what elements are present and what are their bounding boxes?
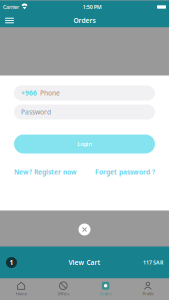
button[interactable]: Forget password ? xyxy=(95,167,155,176)
button[interactable]: Home xyxy=(0,278,42,299)
button[interactable]: Close xyxy=(75,220,93,238)
button[interactable]: Profile xyxy=(127,278,169,299)
button[interactable]: View Cart xyxy=(0,246,169,278)
button[interactable]: Offers xyxy=(42,278,84,299)
staticText: 1:50 PM xyxy=(83,3,102,11)
staticText: Profile xyxy=(142,291,153,296)
staticText: Login xyxy=(77,140,91,148)
staticText: View Cart xyxy=(68,258,100,267)
staticText: Orders xyxy=(73,16,95,25)
staticText: Carrier xyxy=(3,3,19,11)
button[interactable]: Login xyxy=(14,134,155,153)
button[interactable]: Menu xyxy=(0,15,19,26)
staticText: +966 xyxy=(21,89,37,97)
staticText: 1 xyxy=(9,258,13,267)
staticText: Home xyxy=(16,291,27,296)
staticText: Password xyxy=(21,108,51,116)
staticText: New? Register now xyxy=(14,167,77,176)
staticText: Phone xyxy=(40,89,60,97)
staticText: Forget password ? xyxy=(95,167,155,176)
button[interactable]: Orders xyxy=(84,278,127,299)
staticText: Offers xyxy=(57,291,69,296)
staticText: Orders xyxy=(99,291,112,296)
staticText: 117 SAR xyxy=(143,259,163,266)
button[interactable]: New? Register now xyxy=(14,167,77,176)
